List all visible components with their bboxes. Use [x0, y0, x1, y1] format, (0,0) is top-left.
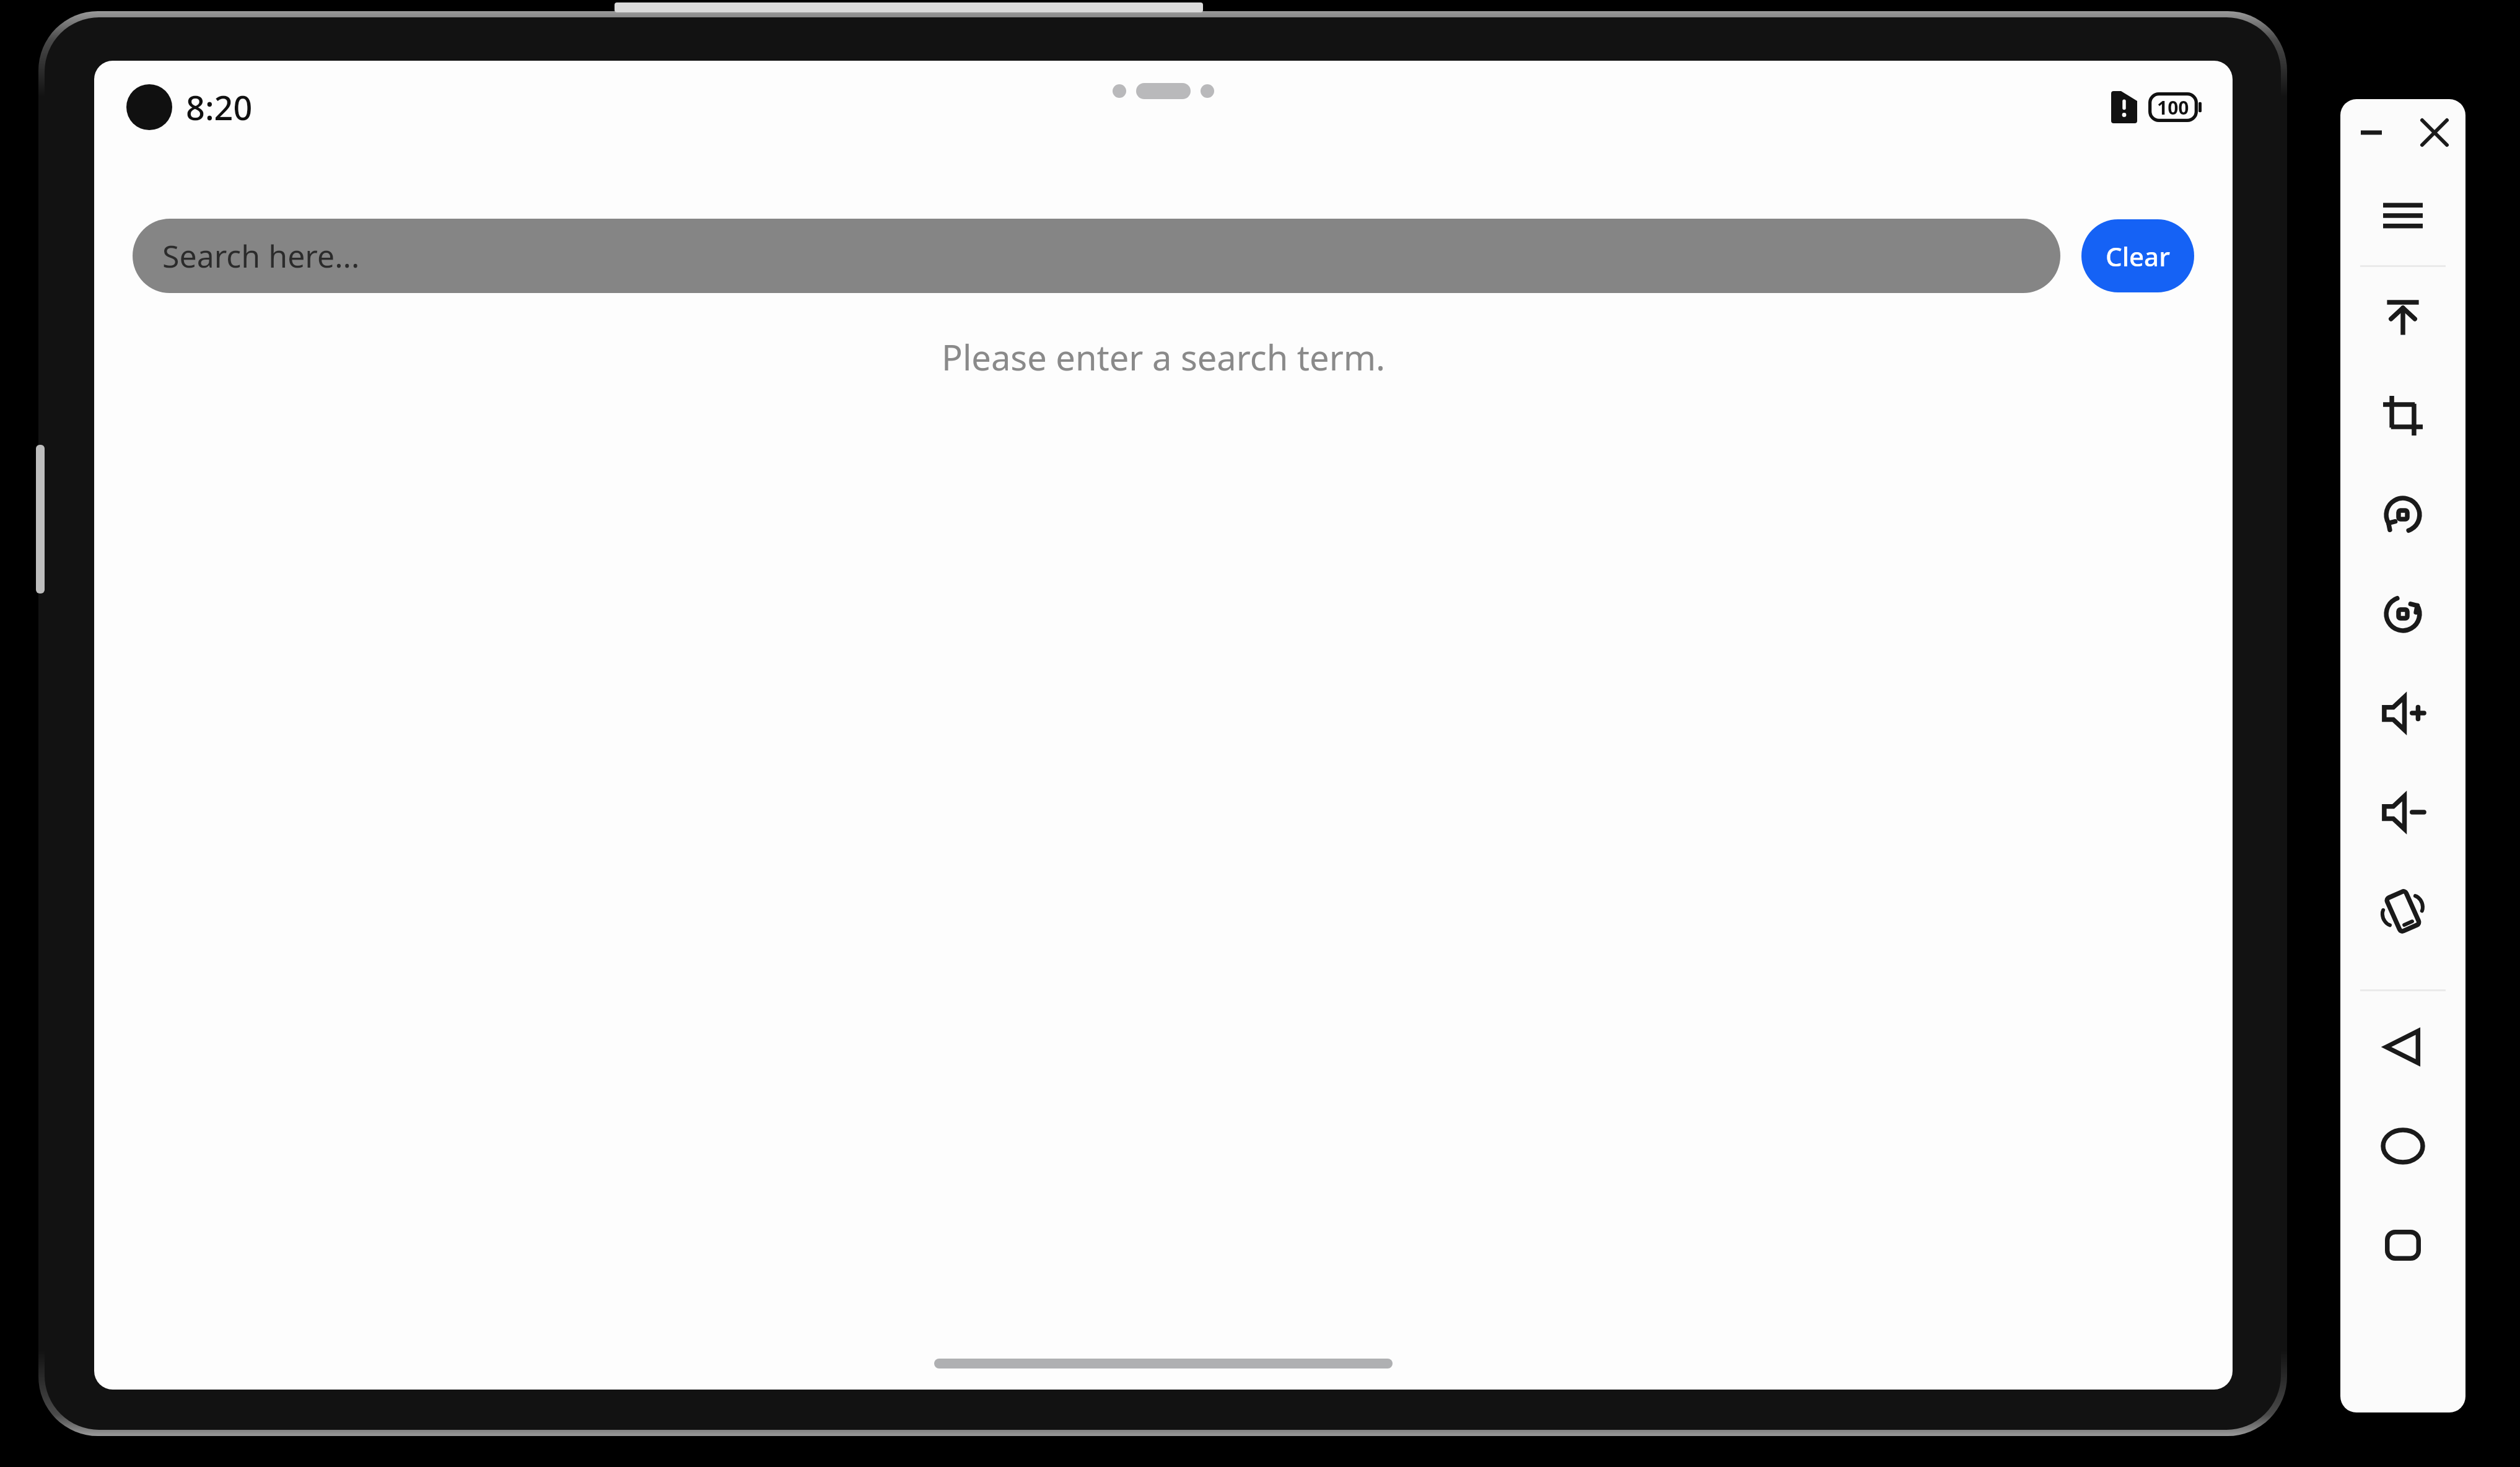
staticText: Search here... [162, 235, 360, 277]
button[interactable]: Screenshot [2340, 366, 2465, 465]
staticText: 8:20 [186, 84, 253, 130]
button[interactable]: Close [2415, 113, 2454, 152]
button[interactable]: Volume down [2340, 763, 2465, 862]
button[interactable]: Overview [2340, 1196, 2465, 1295]
button[interactable]: Home [2340, 1097, 2465, 1196]
button[interactable]: Power [2340, 267, 2465, 366]
staticText: Please enter a search term. [942, 333, 1386, 380]
button[interactable]: Menu [2340, 166, 2465, 265]
button[interactable]: Rotate left [2340, 465, 2465, 564]
button[interactable]: Clear [2081, 219, 2194, 292]
staticText: Clear [2106, 239, 2170, 274]
button[interactable]: Volume up [2340, 663, 2465, 763]
staticText: 100 [2157, 95, 2189, 120]
button[interactable]: Search here... [133, 219, 2060, 293]
button[interactable]: Minimize [2352, 113, 2391, 152]
button[interactable]: Rotate right [2340, 564, 2465, 663]
button[interactable]: Fold [2340, 862, 2465, 961]
button[interactable]: Back [2340, 997, 2465, 1097]
